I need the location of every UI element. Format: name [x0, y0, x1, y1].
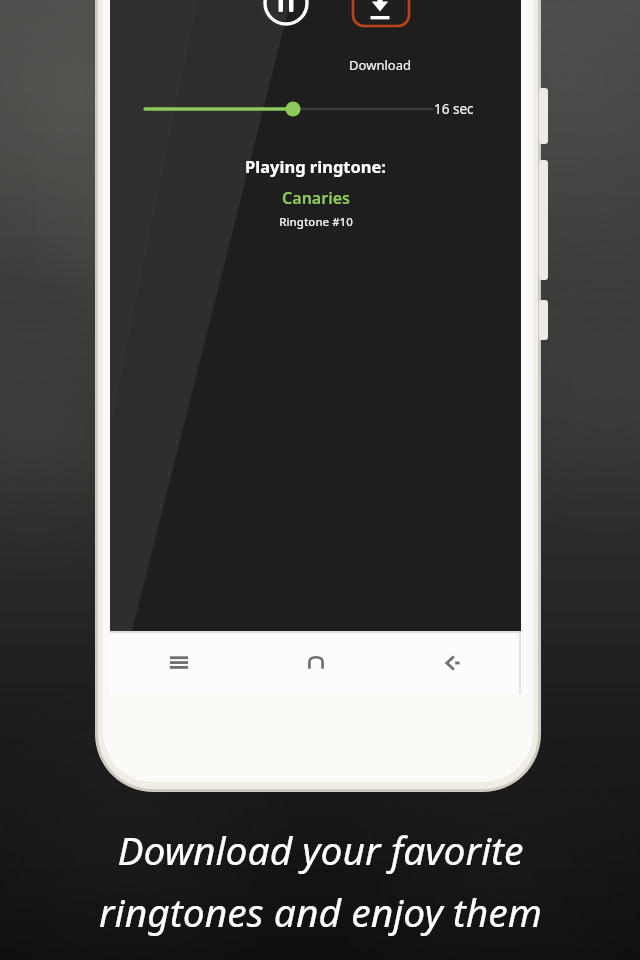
staticText: Download your favorite ringtones and enj… [99, 823, 542, 938]
button[interactable]: Download ringtone [340, 54, 420, 76]
staticText: Download [349, 56, 411, 74]
staticText: 16 sec [434, 100, 474, 118]
button[interactable]: Recent apps [110, 633, 247, 692]
staticText: Canaries [282, 187, 350, 209]
staticText: Ringtone #10 [279, 214, 353, 230]
button[interactable]: Back [384, 633, 521, 692]
button[interactable]: Home [247, 633, 384, 692]
staticText: Playing ringtone: [245, 155, 386, 177]
